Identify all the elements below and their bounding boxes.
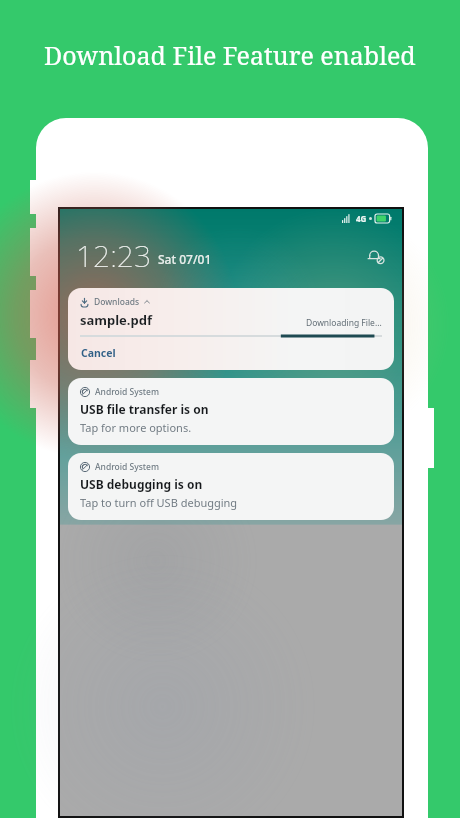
button[interactable]: Downloads <box>68 288 394 370</box>
staticText: Sat 07/01 <box>158 251 212 267</box>
button[interactable]: Android System <box>68 378 394 445</box>
staticText: Download File Feature enabled <box>44 38 416 72</box>
staticText: Cancel <box>81 346 116 360</box>
staticText: USB debugging is on <box>80 476 203 492</box>
button[interactable]: Silence notifications <box>364 244 388 268</box>
staticText: Android System <box>95 461 160 473</box>
staticText: 12:23 <box>76 235 151 276</box>
staticText: Android System <box>95 386 160 398</box>
button[interactable]: Android System <box>68 453 394 520</box>
staticText: USB file transfer is on <box>80 401 209 417</box>
staticText: Downloads <box>94 296 140 308</box>
staticText: sample.pdf <box>80 311 152 329</box>
staticText: 4G <box>356 213 367 224</box>
staticText: Tap to turn off USB debugging <box>80 495 238 510</box>
button[interactable]: Cancel <box>80 345 117 361</box>
staticText: Downloading File... <box>306 317 382 329</box>
staticText: Tap for more options. <box>80 420 192 435</box>
